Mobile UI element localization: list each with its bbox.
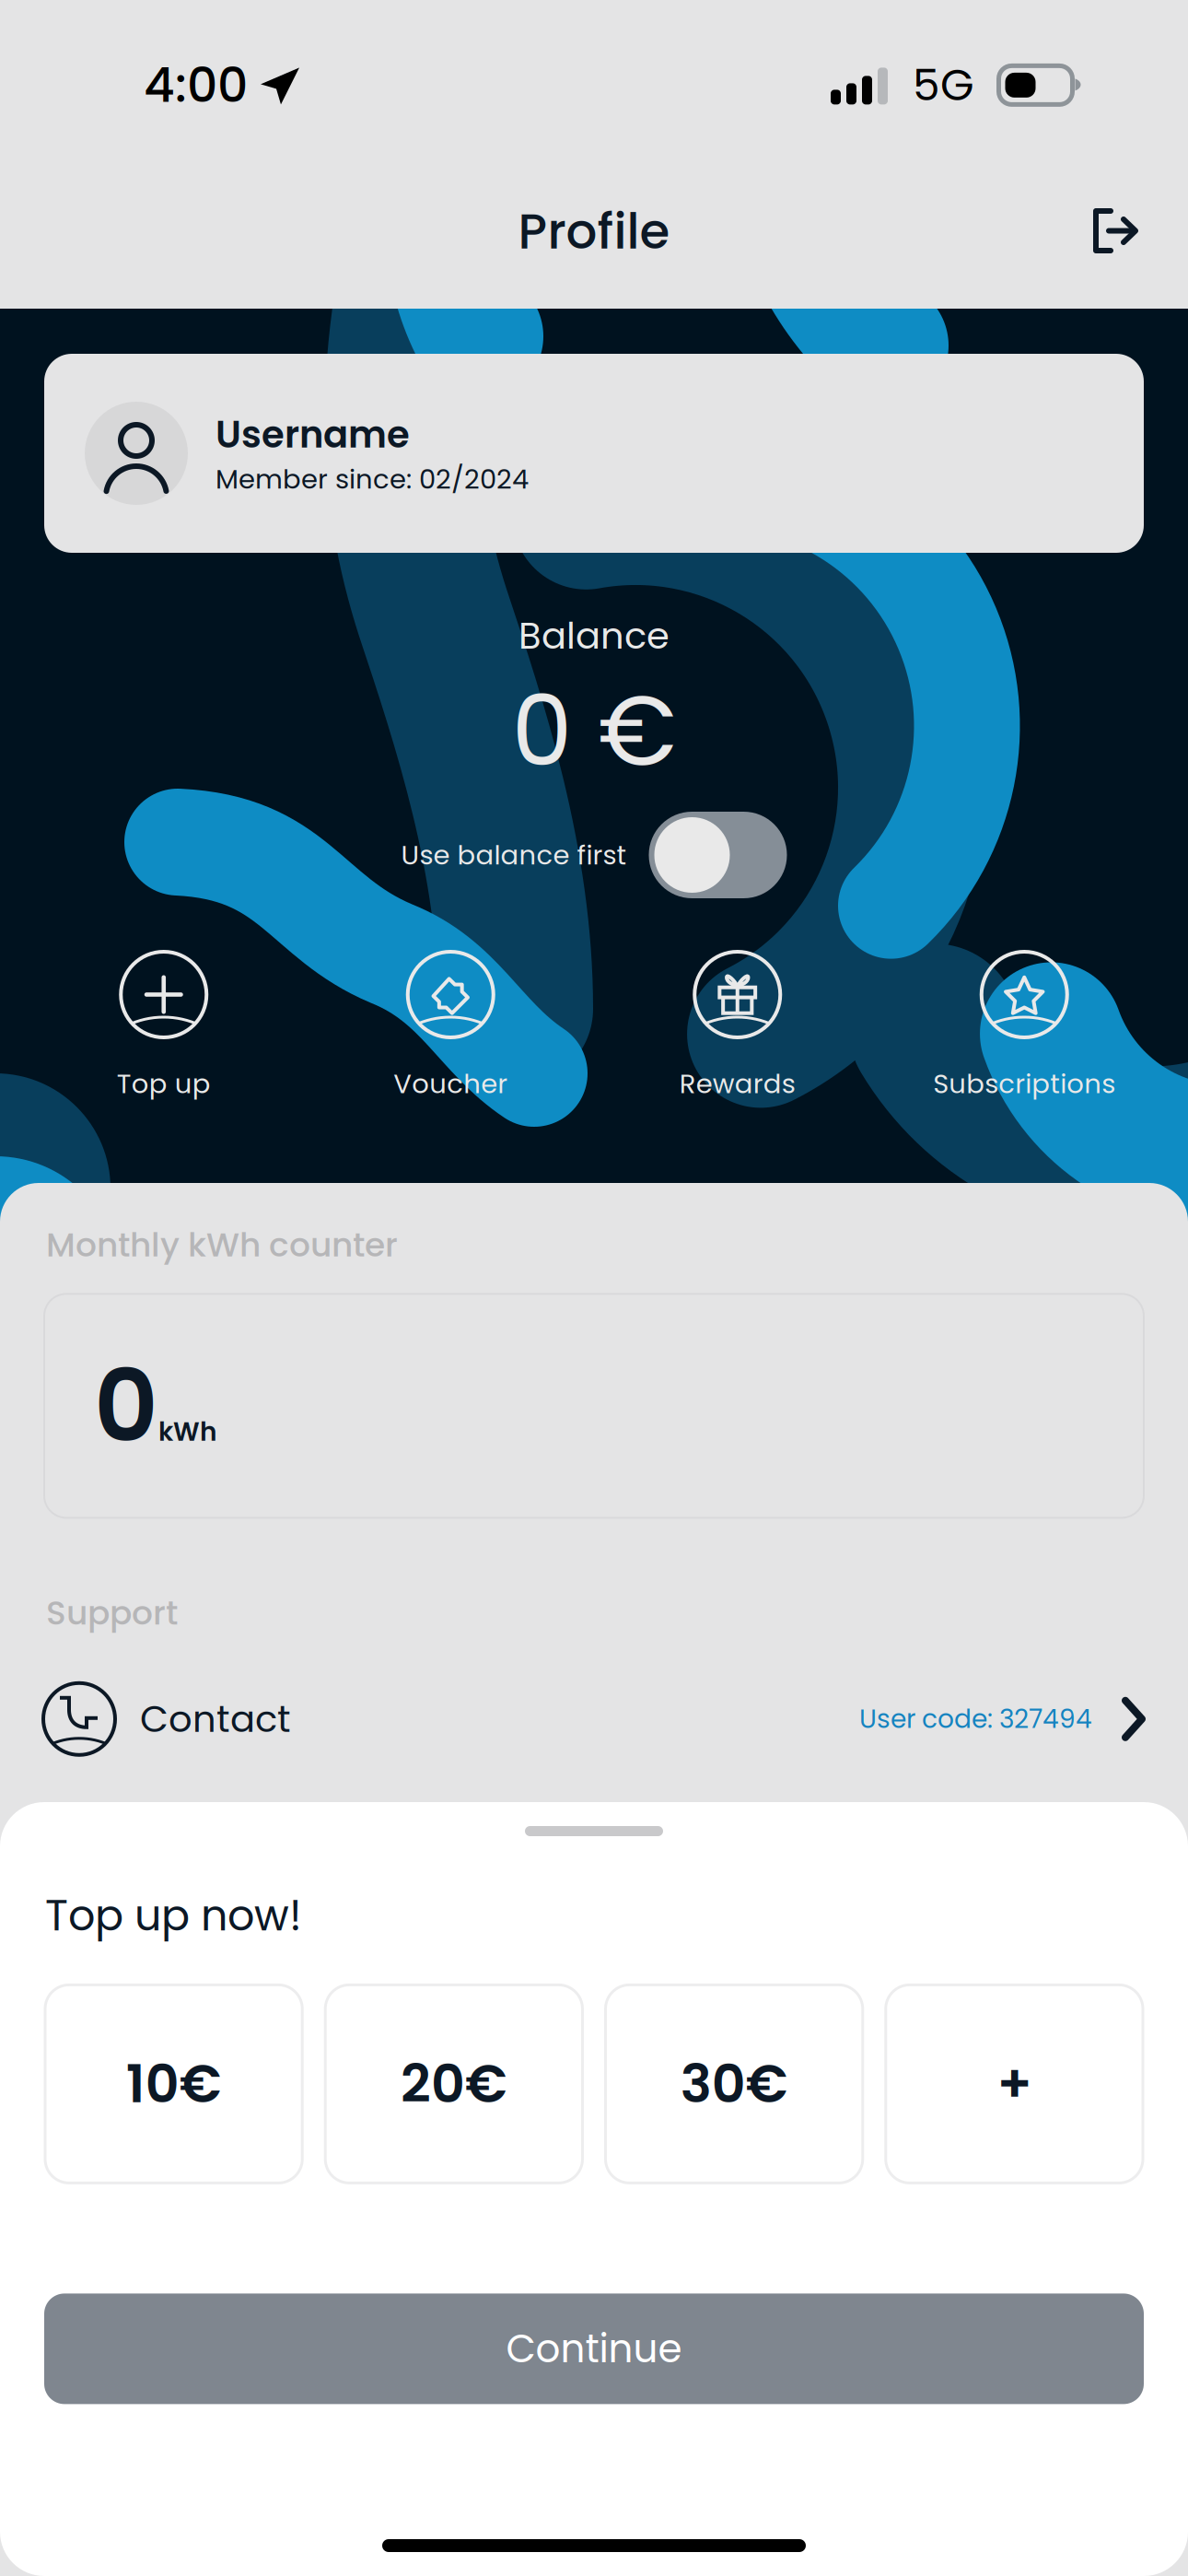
staticText: +: [997, 2047, 1032, 2121]
staticText: Contact: [140, 1693, 291, 1745]
button[interactable]: Continue: [44, 2294, 1144, 2404]
button[interactable]: Subscriptions: [881, 952, 1168, 1102]
staticText: User code: 327494: [859, 1701, 1092, 1737]
staticText: 0: [94, 1336, 158, 1475]
staticText: 20€: [401, 2047, 507, 2121]
button[interactable]: 30€: [606, 1985, 863, 2183]
staticText: Use balance first: [401, 836, 627, 874]
staticText: Top up now!: [45, 1886, 302, 1945]
button[interactable]: Rewards: [594, 952, 881, 1102]
staticText: Member since: 02/2024: [215, 460, 529, 498]
button[interactable]: Top up: [20, 952, 307, 1102]
staticText: Balance: [518, 610, 670, 662]
staticText: Monthly kWh counter: [46, 1222, 398, 1268]
staticText: 5G: [913, 55, 974, 115]
staticText: Subscriptions: [933, 1065, 1115, 1102]
staticText: 10€: [126, 2047, 222, 2121]
button[interactable]: Contact: [0, 1660, 1188, 1778]
button[interactable]: +: [886, 1985, 1143, 2183]
staticText: Username: [215, 409, 410, 460]
button[interactable]: Use balance first: [649, 812, 787, 898]
button[interactable]: Username: [44, 354, 1144, 553]
staticText: Top up: [117, 1065, 211, 1102]
staticText: 0 €: [512, 663, 676, 799]
button[interactable]: Log out: [1056, 166, 1188, 281]
staticText: 4:00: [144, 52, 248, 119]
staticText: Support: [46, 1590, 178, 1636]
staticText: Rewards: [679, 1065, 795, 1102]
button[interactable]: 20€: [325, 1985, 582, 2183]
staticText: Profile: [518, 197, 670, 266]
button[interactable]: 10€: [45, 1985, 302, 2183]
staticText: 30€: [680, 2047, 788, 2121]
staticText: Voucher: [393, 1065, 508, 1102]
staticText: kWh: [158, 1414, 217, 1450]
button[interactable]: Voucher: [307, 952, 594, 1102]
staticText: Continue: [506, 2322, 682, 2376]
